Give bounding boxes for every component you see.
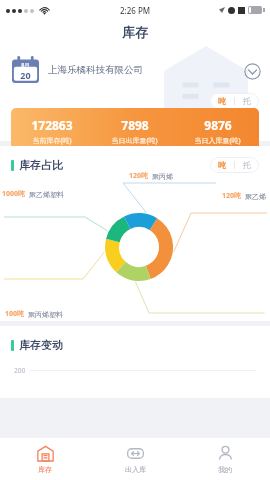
staticText: 吨 <box>218 160 226 170</box>
staticText: 聚乙烯塑料 <box>29 190 64 199</box>
staticText: 20 <box>20 69 31 81</box>
staticText: 120吨 <box>222 191 242 201</box>
button[interactable]: 展开公司选择 <box>244 63 261 80</box>
button[interactable]: 我的 <box>180 438 270 480</box>
staticText: 出入库 <box>125 465 146 474</box>
staticText: 当日出库量(吨) <box>111 136 158 146</box>
staticText: 托 <box>243 160 251 170</box>
staticText: 吨 <box>218 96 226 106</box>
staticText: 聚丙烯塑料 <box>28 310 63 319</box>
button[interactable]: 托 <box>235 157 259 173</box>
button[interactable]: 托 <box>235 93 259 109</box>
button[interactable]: 吨 <box>210 93 234 109</box>
button[interactable]: 出入库 <box>90 438 180 480</box>
staticText: 9876 <box>204 117 232 133</box>
staticText: 聚丙烯 <box>152 172 173 181</box>
staticText: 当前库存(吨) <box>32 136 72 146</box>
button[interactable]: 库存 <box>0 438 90 480</box>
staticText: 库存变动 <box>19 338 63 352</box>
staticText: 120吨 <box>129 171 149 181</box>
staticText: 我的 <box>218 465 232 474</box>
staticText: 2:26 PM <box>120 5 151 16</box>
staticText: 库存占比 <box>19 158 63 172</box>
staticText: 当日入库量(吨) <box>194 136 241 146</box>
staticText: 100吨 <box>5 309 25 319</box>
staticText: 上海乐橘科技有限公司 <box>48 64 143 76</box>
button[interactable]: 吨 <box>210 157 234 173</box>
staticText: 8月 <box>21 61 30 69</box>
staticText: 172863 <box>31 117 73 133</box>
staticText: 托 <box>243 96 251 106</box>
staticText: 库存 <box>38 465 52 474</box>
staticText: 库存 <box>122 24 148 40</box>
staticText: 7898 <box>121 117 149 133</box>
staticText: 聚乙烯 <box>245 192 266 201</box>
staticText: 1000吨 <box>2 189 26 199</box>
button[interactable]: 172863 <box>11 108 259 155</box>
staticText: 200 <box>14 366 26 375</box>
